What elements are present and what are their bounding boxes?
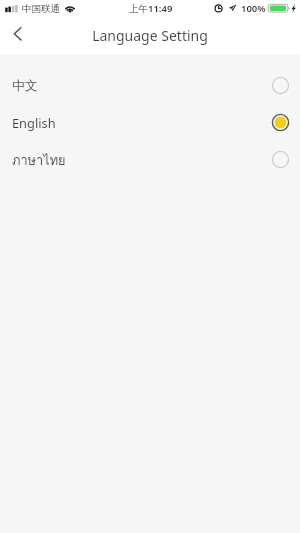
button[interactable]: ภาษาไทย (0, 141, 300, 178)
staticText: English (12, 114, 56, 131)
staticText: ภาษาไทย (12, 150, 66, 170)
button[interactable]: English (0, 104, 300, 141)
staticText: 上午11:49 (129, 2, 173, 15)
staticText: 中国联通 (22, 3, 60, 15)
button[interactable]: Back (0, 20, 34, 54)
button[interactable]: 中文 (0, 67, 300, 104)
staticText: 中文 (12, 78, 38, 94)
staticText: Language Setting (92, 26, 208, 45)
staticText: 100% (241, 2, 266, 15)
